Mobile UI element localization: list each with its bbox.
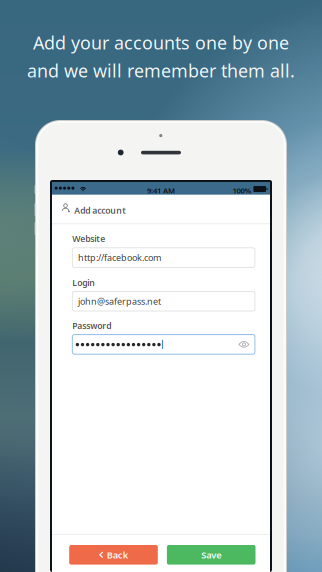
button[interactable]: Save (167, 545, 255, 565)
staticText: Login (72, 277, 95, 289)
button[interactable]: Add account (52, 195, 270, 224)
staticText: john@saferpass.net (78, 295, 161, 307)
staticText: 9:41 AM (147, 185, 175, 196)
staticText: 100% (233, 185, 252, 196)
staticText: Add account (74, 205, 126, 216)
staticText: Password (72, 320, 111, 332)
staticText: http://facebook.com (78, 251, 161, 264)
staticText: Back (107, 548, 128, 561)
staticText: and we will remember them all. (27, 58, 295, 83)
staticText: Save (201, 548, 221, 561)
button[interactable]: Back (69, 545, 158, 565)
staticText: Add your accounts one by one (33, 30, 289, 55)
staticText: Website (72, 233, 105, 245)
